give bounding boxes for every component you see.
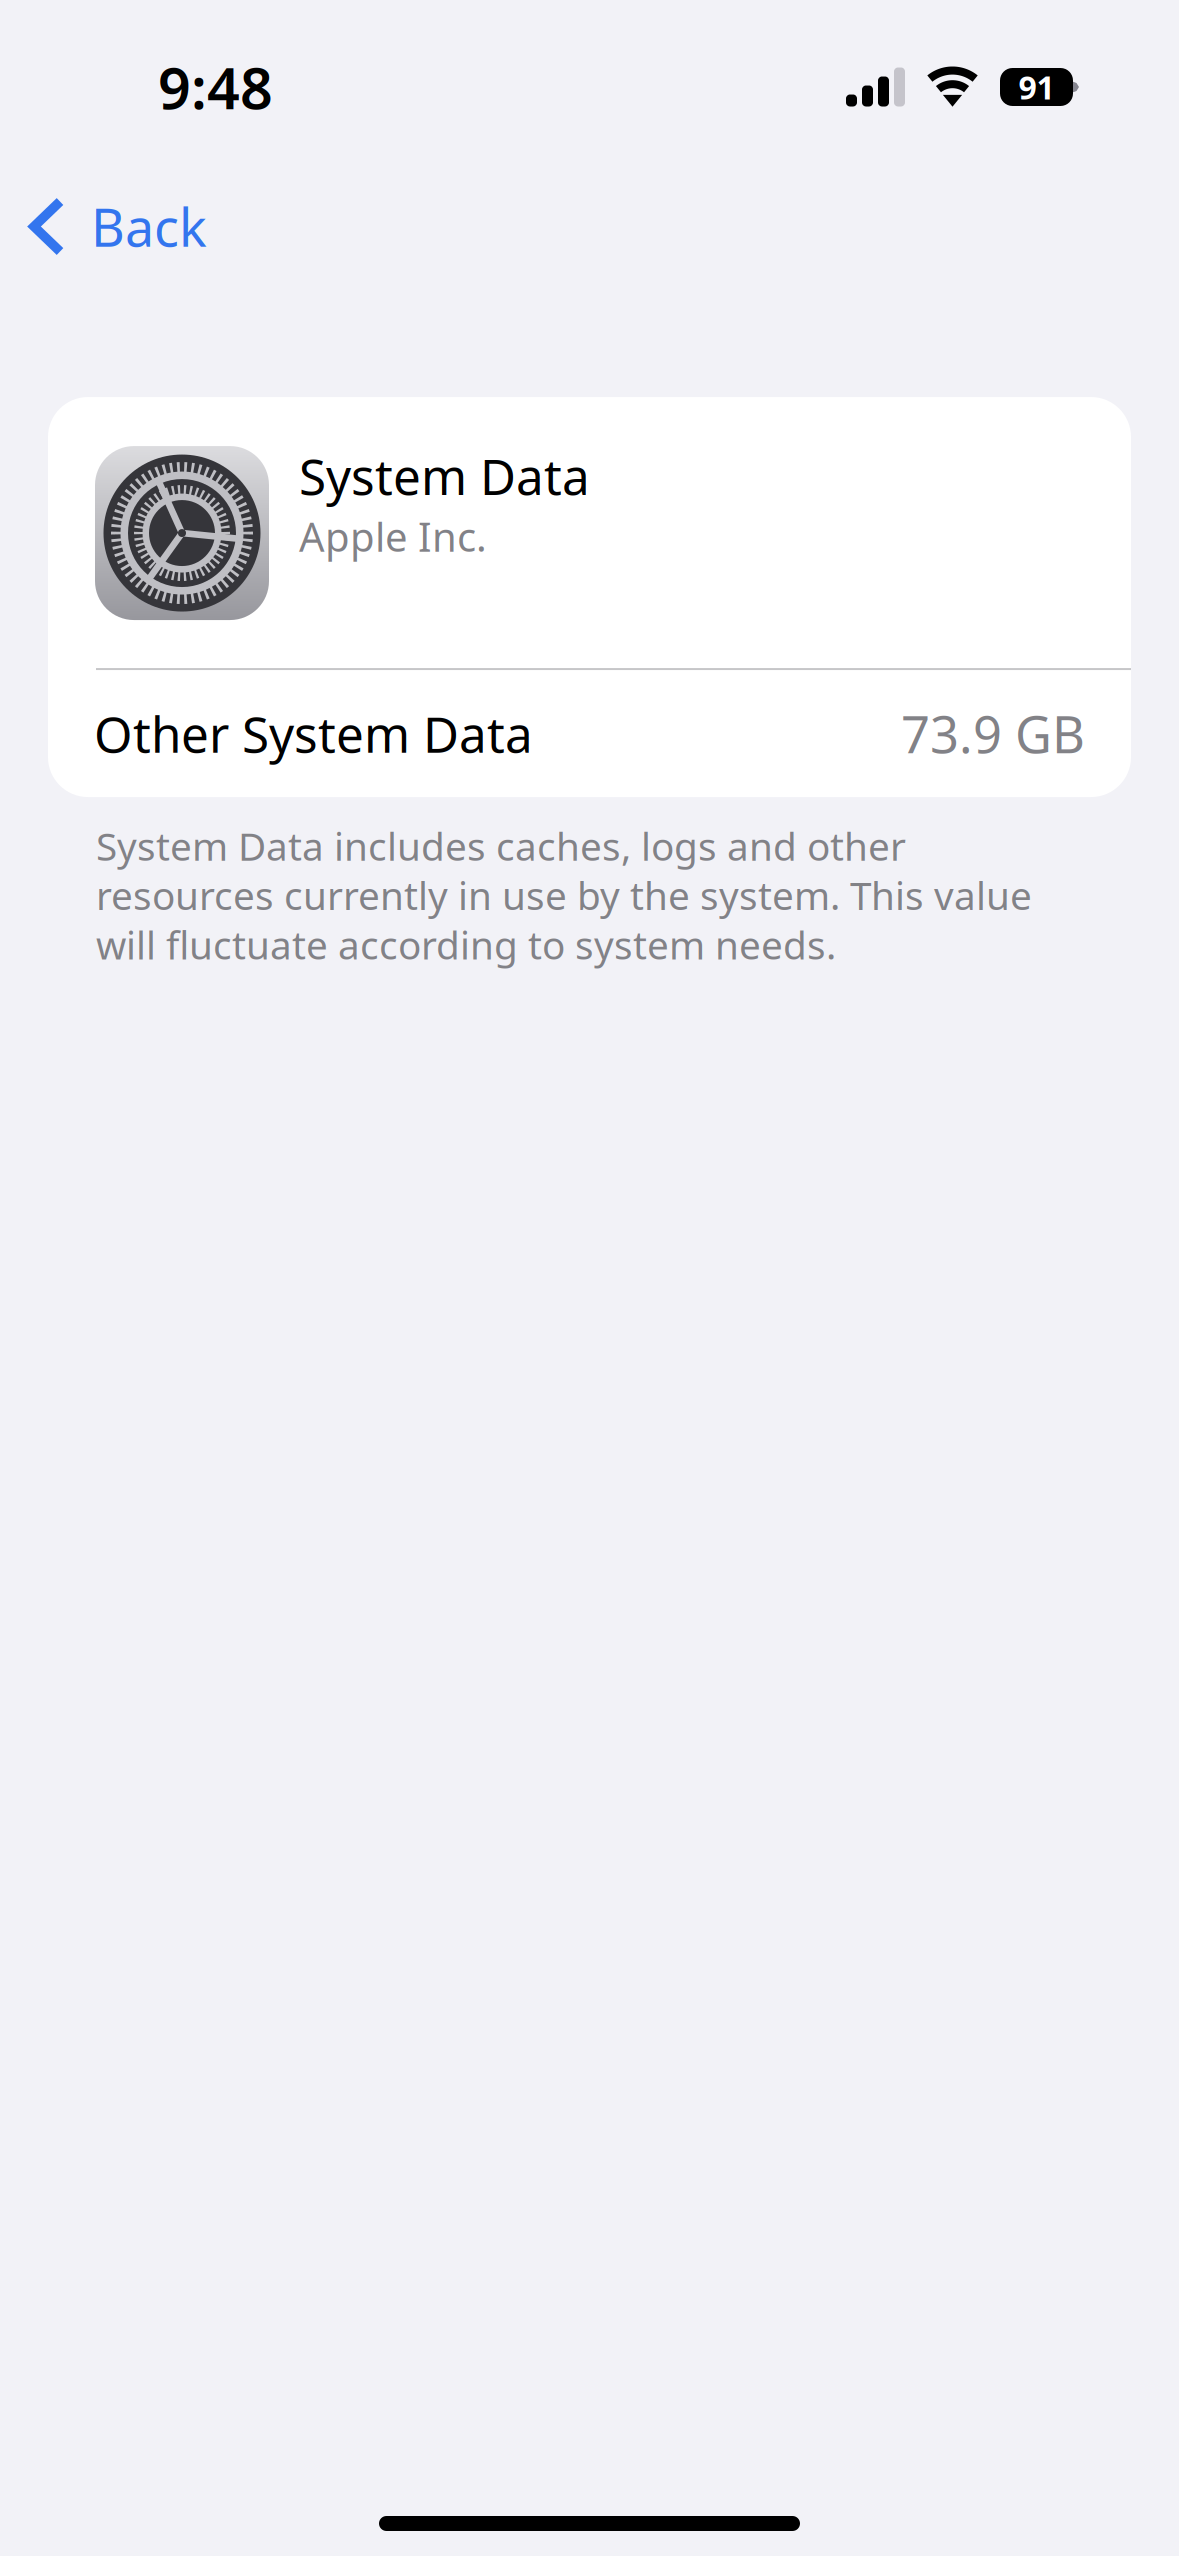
staticText: 9:48: [158, 49, 273, 125]
staticText: System Data includes caches, logs and ot…: [96, 820, 1032, 970]
staticText: System Data: [299, 443, 590, 509]
staticText: 73.9 GB: [901, 700, 1085, 767]
staticText: Back: [91, 192, 207, 261]
staticText: Other System Data: [94, 701, 533, 766]
button[interactable]: Other System Data: [48, 670, 1131, 797]
staticText: 91: [1018, 66, 1054, 108]
staticText: Apple Inc.: [299, 510, 487, 563]
button[interactable]: Back: [0, 174, 233, 279]
